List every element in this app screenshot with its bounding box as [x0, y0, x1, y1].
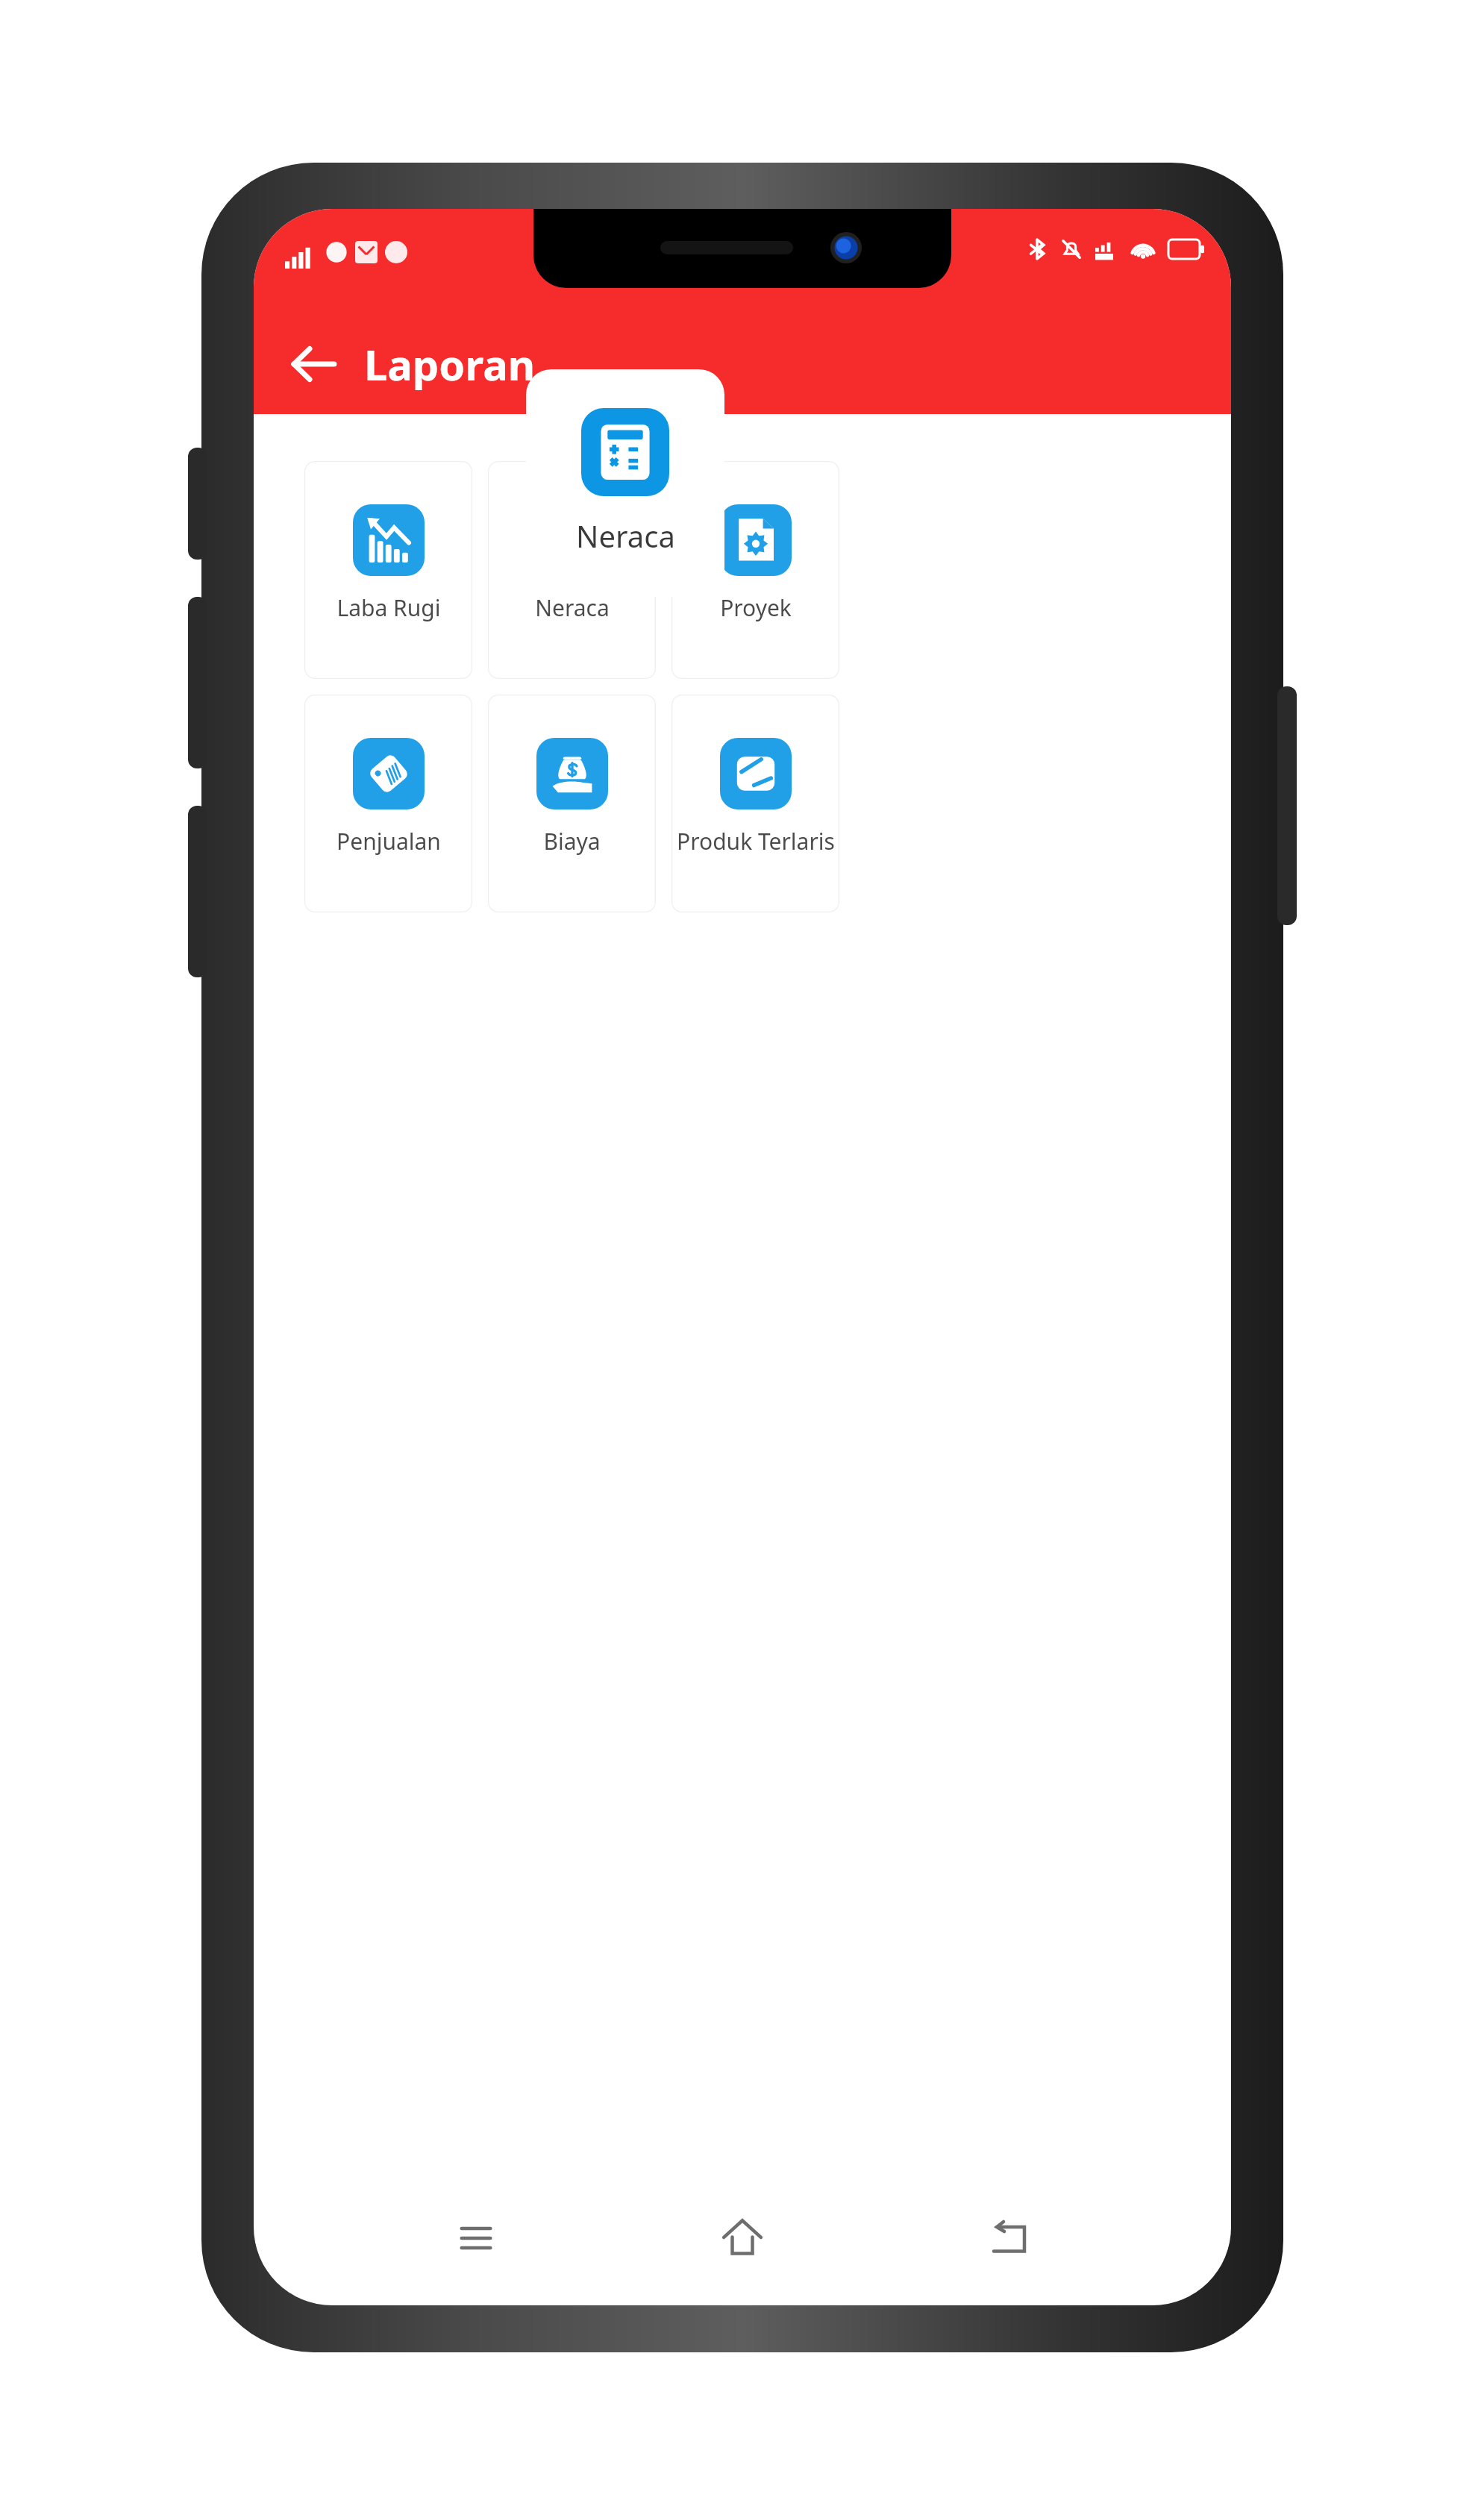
- button[interactable]: Penjualan: [304, 695, 472, 912]
- button[interactable]: Back: [965, 2193, 1054, 2283]
- staticText: Neraca: [535, 592, 610, 623]
- staticText: Biaya: [543, 826, 601, 856]
- button[interactable]: Home: [698, 2193, 787, 2283]
- staticText: Laba Rugi: [336, 592, 441, 623]
- button[interactable]: Biaya: [488, 695, 656, 912]
- button[interactable]: Neraca: [488, 461, 656, 679]
- button[interactable]: Back: [278, 328, 349, 400]
- staticText: Neraca: [576, 516, 675, 556]
- staticText: Proyek: [720, 592, 792, 623]
- button[interactable]: Proyek: [671, 461, 839, 679]
- button[interactable]: Produk Terlaris: [671, 695, 839, 912]
- button[interactable]: Recents: [431, 2193, 521, 2283]
- button[interactable]: Laba Rugi: [304, 461, 472, 679]
- staticText: Produk Terlaris: [677, 826, 835, 856]
- staticText: Laporan: [364, 336, 536, 392]
- button[interactable]: Neraca: [526, 369, 724, 597]
- staticText: Penjualan: [336, 826, 441, 856]
